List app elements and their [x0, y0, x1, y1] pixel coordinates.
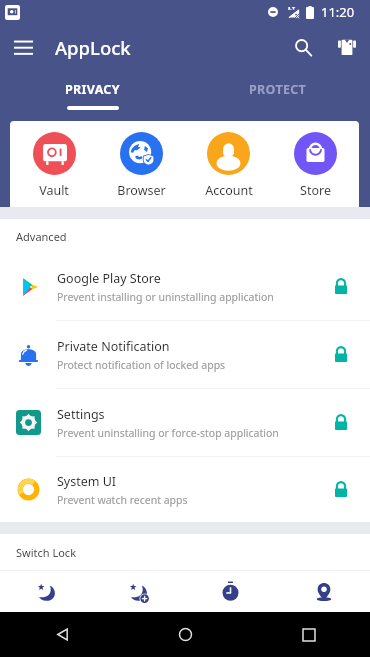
button[interactable]: Back — [0, 612, 124, 657]
button[interactable]: Home — [124, 612, 247, 657]
staticText: Settings — [57, 406, 105, 423]
button[interactable]: Google Play Store — [0, 253, 370, 320]
button[interactable]: Vault — [10, 121, 98, 207]
button[interactable]: Account — [185, 121, 272, 207]
staticText: Vault — [39, 182, 69, 199]
button[interactable]: Timer — [184, 571, 277, 612]
button[interactable]: Menu — [0, 24, 46, 70]
button[interactable]: Lock — [312, 389, 370, 456]
button[interactable]: PROTECT — [185, 70, 370, 121]
button[interactable]: Private Notification — [0, 321, 370, 388]
staticText: PRIVACY — [65, 81, 120, 98]
button[interactable]: Lock — [312, 253, 370, 320]
button[interactable]: Lock — [312, 457, 370, 522]
staticText: System UI — [57, 473, 117, 490]
button[interactable]: Location — [277, 571, 370, 612]
button[interactable]: Search — [281, 25, 325, 69]
button[interactable]: Add night mode — [92, 571, 184, 612]
staticText: AppLock — [55, 35, 131, 60]
button[interactable]: System UI — [0, 457, 370, 522]
staticText: 11:20 — [321, 3, 355, 21]
button[interactable]: Browser — [98, 121, 185, 207]
button[interactable]: Settings — [0, 389, 370, 456]
staticText: Account — [205, 182, 253, 199]
button[interactable]: Theme — [325, 25, 369, 69]
staticText: Store — [300, 182, 331, 199]
button[interactable]: Lock — [312, 321, 370, 388]
button[interactable]: Recents — [247, 612, 370, 657]
staticText: Prevent watch recent apps — [57, 493, 188, 507]
button[interactable]: Store — [272, 121, 359, 207]
button[interactable]: PRIVACY — [0, 70, 185, 121]
staticText: Prevent uninstalling or force-stop appli… — [57, 426, 279, 440]
staticText: Private Notification — [57, 338, 170, 355]
staticText: Browser — [117, 182, 166, 199]
staticText: Protect notification of locked apps — [57, 358, 226, 372]
staticText: Advanced — [16, 229, 67, 244]
button[interactable]: Night mode — [0, 571, 92, 612]
staticText: PROTECT — [249, 81, 307, 98]
staticText: Prevent installing or uninstalling appli… — [57, 290, 274, 304]
staticText: Google Play Store — [57, 270, 161, 287]
staticText: Switch Lock — [16, 545, 77, 560]
